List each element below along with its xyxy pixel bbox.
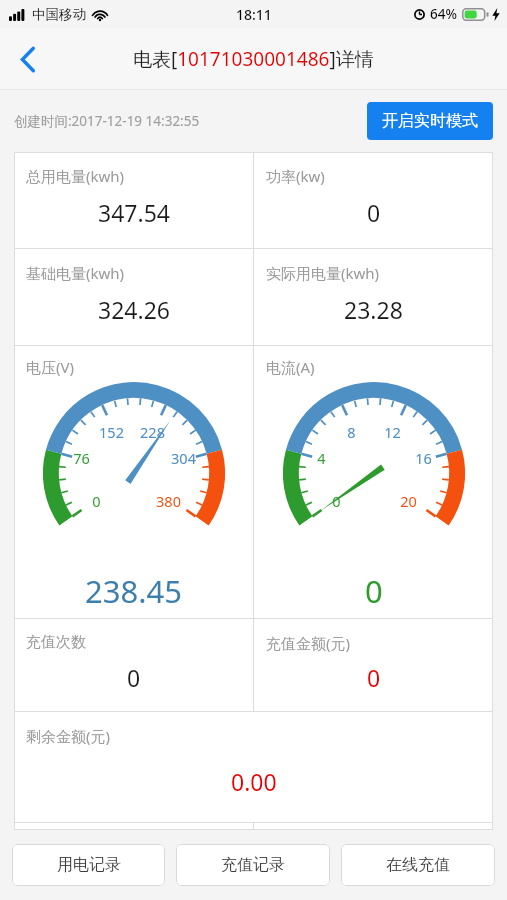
staticText: 总用电量(kwh) [26,166,125,186]
staticText: 基础电量(kwh) [26,263,125,283]
staticText: 64% [430,5,457,23]
staticText: 充值次数 [26,633,86,652]
staticText: 0 [332,491,341,511]
staticText: 23.28 [344,294,403,325]
staticText: 228 [140,422,165,442]
staticText: 0 [92,491,101,511]
staticText: 电流(A) [266,357,315,377]
staticText: 0 [367,197,381,228]
staticText: 8 [347,422,356,442]
staticText: 剩余金额(元) [26,726,111,746]
button[interactable]: 开启实时模式 [367,102,493,140]
staticText: 0 [127,662,141,693]
staticText: 16 [415,448,432,468]
staticText: 0 [367,662,381,693]
staticText: 用电记录 [57,855,121,875]
staticText: 380 [156,491,181,511]
staticText: 电压(V) [26,357,75,377]
button[interactable]: 在线充值 [341,844,495,886]
button[interactable]: 用电记录 [12,844,165,886]
staticText: 4 [317,448,326,468]
staticText: 充值记录 [221,855,285,875]
staticText: 76 [73,448,90,468]
staticText: 12 [384,422,401,442]
staticText: 充值金额(元) [266,633,351,653]
button[interactable]: 充值记录 [176,844,330,886]
staticText: 0 [365,570,383,612]
button[interactable]: Back [0,31,56,87]
staticText: 347.54 [98,197,170,228]
staticText: 20 [400,491,417,511]
staticText: 电表[10171030001486]详情 [133,46,374,72]
staticText: 238.45 [85,570,182,612]
staticText: 304 [171,448,196,468]
staticText: 创建时间:2017-12-19 14:32:55 [14,112,200,130]
staticText: 功率(kw) [266,166,325,186]
staticText: 152 [99,422,124,442]
staticText: 中国移动 [32,6,86,23]
staticText: 开启实时模式 [382,111,478,131]
staticText: 18:11 [236,5,272,24]
staticText: 324.26 [98,294,170,325]
staticText: 实际用电量(kwh) [266,263,380,283]
staticText: 0.00 [231,766,277,797]
staticText: 在线充值 [386,855,450,875]
